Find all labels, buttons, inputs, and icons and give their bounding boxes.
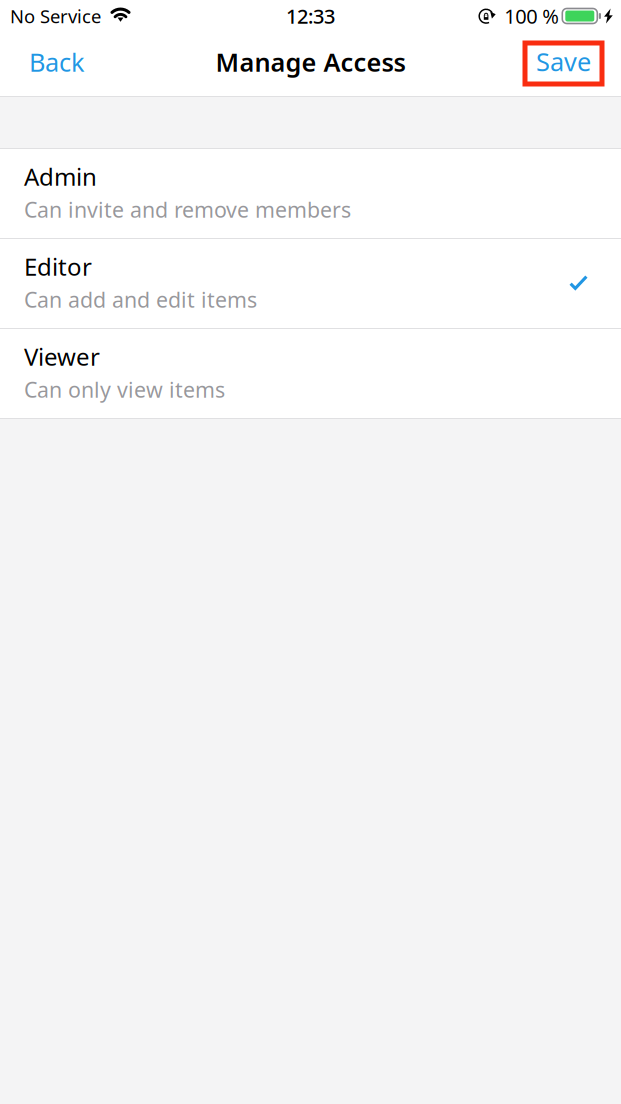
staticText: No Service	[10, 3, 101, 29]
staticText: 100 %	[504, 3, 559, 29]
staticText: Can only view items	[24, 375, 225, 404]
button[interactable]: Viewer	[0, 329, 621, 419]
staticText: Save	[536, 45, 591, 78]
button[interactable]: Editor	[0, 239, 621, 329]
staticText: 12:33	[286, 3, 335, 29]
staticText: Can invite and remove members	[24, 195, 351, 224]
staticText: Manage Access	[215, 45, 405, 79]
staticText: Editor	[24, 250, 92, 282]
button[interactable]: Admin	[0, 149, 621, 239]
button[interactable]: Back	[16, 35, 98, 93]
staticText: Viewer	[24, 340, 100, 372]
button[interactable]: Save	[525, 43, 602, 84]
staticText: Back	[29, 45, 85, 79]
staticText: Admin	[24, 160, 97, 192]
staticText: Can add and edit items	[24, 285, 257, 314]
